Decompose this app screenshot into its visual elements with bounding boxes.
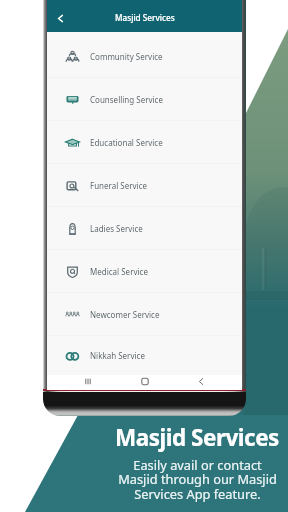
button[interactable]: Back <box>48 6 73 31</box>
button[interactable]: Nikkah Service <box>47 336 242 375</box>
staticText: Counselling Service <box>90 94 163 105</box>
button[interactable]: Counselling Service <box>47 78 242 120</box>
staticText: Funeral Service <box>90 180 148 191</box>
button[interactable]: Medical Service <box>47 250 242 292</box>
staticText: Community Service <box>90 51 163 62</box>
button[interactable]: Home <box>137 374 153 389</box>
button[interactable]: Newcomer Service <box>47 293 242 335</box>
staticText: Newcomer Service <box>90 309 160 320</box>
staticText: Medical Service <box>90 266 148 277</box>
staticText: Educational Service <box>90 137 163 148</box>
button[interactable]: Recents <box>80 374 96 389</box>
staticText: Nikkah Service <box>90 350 145 361</box>
staticText: Ladies Service <box>90 223 143 234</box>
button[interactable]: Funeral Service <box>47 164 242 206</box>
button[interactable]: Ladies Service <box>47 207 242 249</box>
staticText: Masjid Services <box>115 422 279 453</box>
staticText: Masjid Services <box>115 12 175 23</box>
button[interactable]: Educational Service <box>47 121 242 163</box>
staticText: Easily avail or contact Masjid through o… <box>118 456 277 503</box>
button[interactable]: Community Service <box>47 35 242 77</box>
button[interactable]: Back <box>193 374 209 389</box>
